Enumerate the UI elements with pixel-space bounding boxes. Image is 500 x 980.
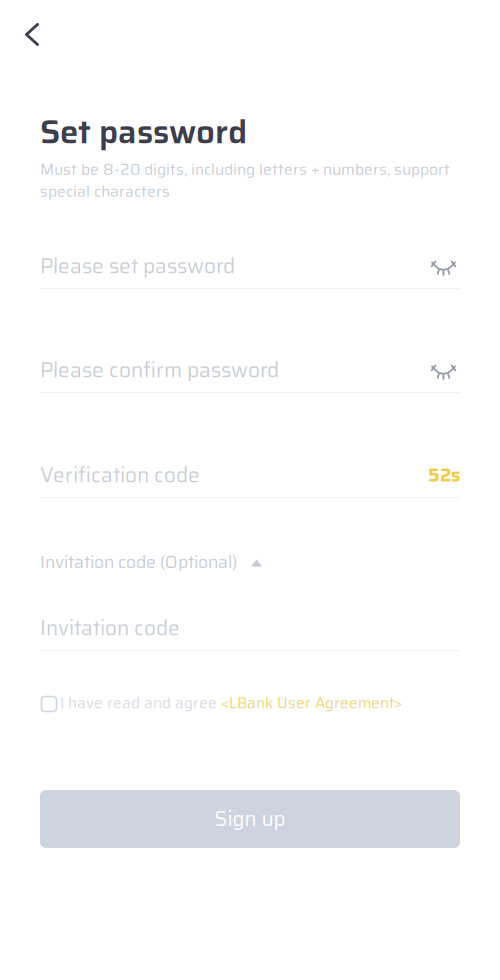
button[interactable]: Sign up bbox=[40, 790, 460, 848]
button[interactable]: I have read and agree bbox=[40, 692, 460, 714]
staticText: Verification code bbox=[40, 459, 200, 491]
button[interactable]: Invitation code bbox=[40, 612, 460, 644]
button[interactable]: Back bbox=[14, 11, 62, 57]
staticText: Invitation code (Optional) bbox=[40, 548, 237, 576]
button[interactable]: Verification code bbox=[40, 459, 460, 491]
button[interactable]: Please set password bbox=[40, 250, 460, 282]
staticText: Invitation code bbox=[40, 612, 180, 644]
staticText: Please set password bbox=[40, 250, 235, 282]
button[interactable]: Invitation code (Optional) bbox=[40, 550, 460, 574]
staticText: Sign up bbox=[214, 803, 285, 835]
staticText: Set password bbox=[40, 106, 247, 158]
staticText: I have read and agree bbox=[60, 691, 221, 715]
staticText: Must be 8-20 digits, including letters +… bbox=[40, 157, 450, 182]
staticText: <LBank User Agreement> bbox=[221, 691, 402, 715]
staticText: 52s bbox=[428, 460, 460, 490]
staticText: special characters bbox=[40, 179, 170, 204]
button[interactable]: Please confirm password bbox=[40, 354, 460, 386]
staticText: Please confirm password bbox=[40, 354, 279, 386]
